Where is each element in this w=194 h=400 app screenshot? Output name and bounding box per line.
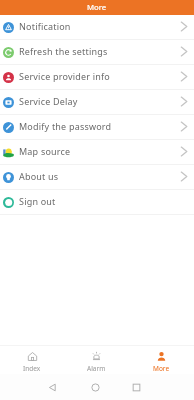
button[interactable]: Index — [0, 346, 64, 374]
button[interactable]: Alarm — [64, 346, 129, 374]
staticText: Map source — [19, 145, 71, 157]
button[interactable]: Refresh the settings — [0, 40, 194, 64]
button[interactable]: Notification — [0, 15, 194, 39]
button[interactable]: Service Delay — [0, 90, 194, 114]
staticText: Refresh the settings — [19, 45, 108, 57]
button[interactable]: About us — [0, 165, 194, 189]
button[interactable]: Recents — [120, 374, 152, 400]
staticText: Service Delay — [19, 95, 78, 107]
other: More — [156, 351, 167, 362]
button[interactable]: Service provider info — [0, 65, 194, 89]
other: Alarm — [91, 351, 102, 362]
button[interactable]: Map source — [0, 140, 194, 164]
other: Index — [27, 351, 38, 362]
staticText: Service provider info — [19, 70, 110, 82]
staticText: Sign out — [19, 195, 56, 207]
button[interactable]: More — [129, 346, 194, 374]
staticText: Modify the password — [19, 120, 112, 132]
staticText: Alarm — [87, 364, 106, 373]
staticText: Notification — [19, 20, 71, 32]
button[interactable]: Modify the password — [0, 115, 194, 139]
button[interactable]: Home — [79, 374, 111, 400]
button[interactable]: Back — [36, 374, 68, 400]
button[interactable]: Sign out — [0, 190, 194, 214]
staticText: About us — [19, 170, 59, 182]
staticText: Index — [23, 364, 41, 373]
staticText: More — [87, 2, 107, 13]
staticText: More — [153, 364, 170, 373]
